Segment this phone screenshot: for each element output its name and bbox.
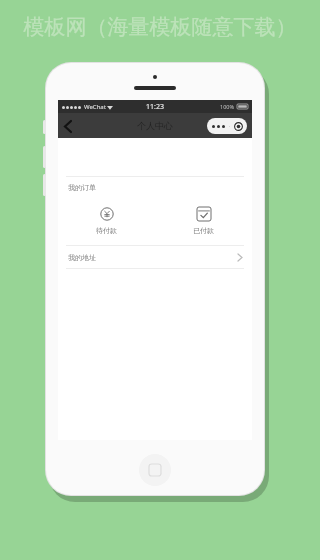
button[interactable]: 待付款 [58, 197, 155, 245]
staticText: 100% [220, 103, 235, 110]
button[interactable]: 我的地址 [58, 246, 252, 268]
staticText: 待付款 [96, 226, 117, 235]
staticText: 我的订单 [68, 183, 96, 192]
button[interactable]: 已付款 [155, 197, 252, 245]
staticText: 模板网（海量模板随意下载） [0, 14, 320, 40]
staticText: 已付款 [193, 226, 214, 235]
staticText: 我的地址 [68, 253, 96, 262]
staticText: WeChat [84, 103, 106, 111]
button[interactable]: Back [58, 116, 78, 136]
staticText: 个人中心 [137, 120, 173, 131]
button[interactable]: Menu [207, 118, 247, 134]
staticText: 11:23 [146, 102, 164, 112]
